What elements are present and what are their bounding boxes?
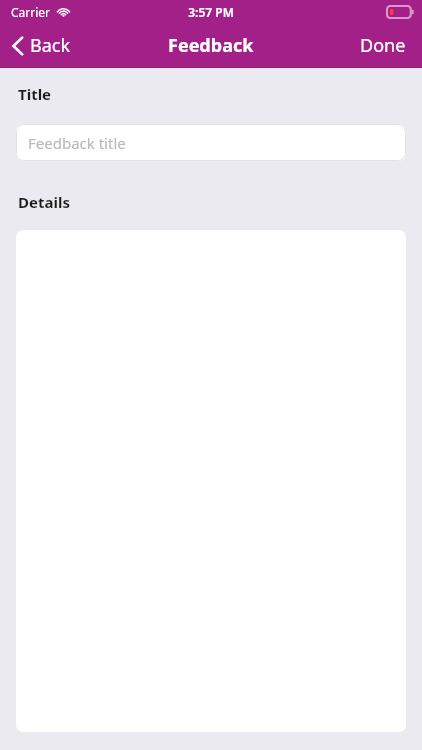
staticText: Carrier <box>11 4 51 20</box>
staticText: Back <box>30 33 71 58</box>
staticText: Details <box>18 192 70 212</box>
button[interactable]: Feedback title <box>16 124 406 161</box>
staticText: Feedback title <box>28 133 126 153</box>
staticText: Feedback <box>168 33 254 58</box>
staticText: 3:57 PM <box>188 4 234 20</box>
staticText: Done <box>360 33 406 58</box>
button[interactable]: Back <box>0 24 85 67</box>
staticText: Title <box>18 84 52 104</box>
button[interactable]: Done <box>344 24 422 67</box>
